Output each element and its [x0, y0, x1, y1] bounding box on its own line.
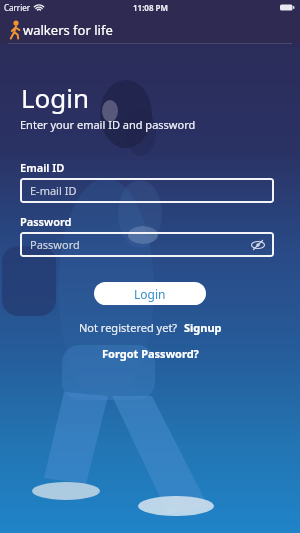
button[interactable]: E-mail ID [20, 178, 274, 203]
staticText: Password [20, 214, 72, 229]
button[interactable]: walkers for life [8, 19, 113, 40]
staticText: Not registered yet? [79, 320, 178, 335]
staticText: E-mail ID [30, 183, 77, 198]
button[interactable]: Login [94, 282, 206, 305]
staticText: Email ID [20, 160, 65, 175]
staticText: Enter your email ID and password [20, 117, 196, 132]
button[interactable]: Signup [184, 320, 222, 335]
staticText: Login [134, 286, 166, 302]
staticText: Password [30, 237, 80, 252]
button[interactable]: Forgot Password? [102, 346, 199, 361]
staticText: Carrier [4, 2, 31, 13]
staticText: walkers for life [23, 21, 113, 39]
staticText: Login [21, 80, 90, 115]
button[interactable] [251, 239, 266, 251]
button[interactable]: Password [20, 232, 274, 257]
staticText: 11:08 PM [133, 2, 168, 13]
